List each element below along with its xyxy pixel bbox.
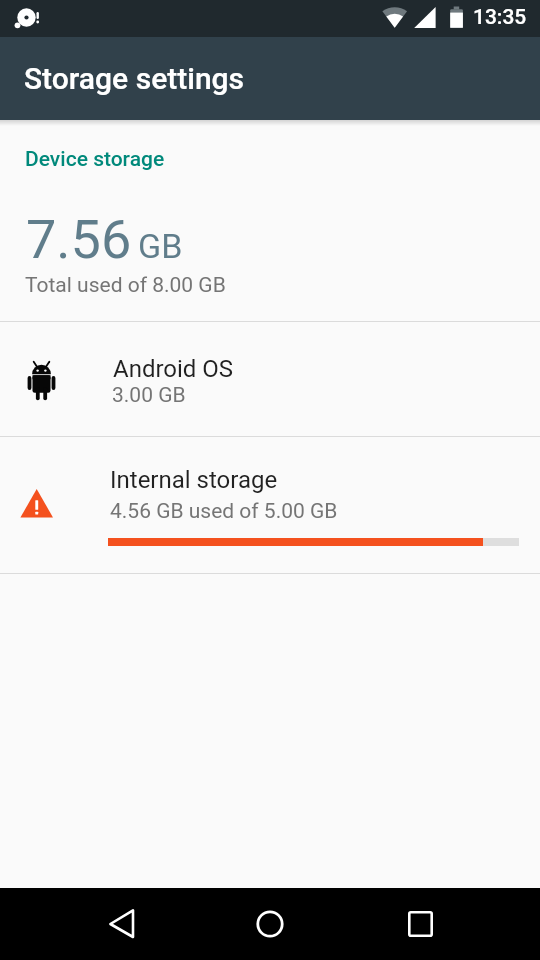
- staticText: Storage settings: [24, 61, 245, 96]
- button[interactable]: Android OS: [0, 322, 540, 436]
- button[interactable]: [92, 888, 152, 960]
- button[interactable]: [390, 888, 450, 960]
- staticText: Device storage: [25, 147, 165, 172]
- staticText: Internal storage: [110, 466, 278, 494]
- staticText: Total used of 8.00 GB: [25, 273, 226, 298]
- staticText: 4.56 GB used of 5.00 GB: [110, 499, 338, 524]
- staticText: 13:35: [473, 5, 527, 30]
- button[interactable]: Internal storage: [0, 437, 540, 573]
- staticText: Android OS: [113, 355, 234, 383]
- button[interactable]: [240, 888, 300, 960]
- staticText: 7.56: [26, 208, 132, 271]
- staticText: 3.00 GB: [112, 383, 186, 408]
- staticText: GB: [138, 226, 183, 266]
